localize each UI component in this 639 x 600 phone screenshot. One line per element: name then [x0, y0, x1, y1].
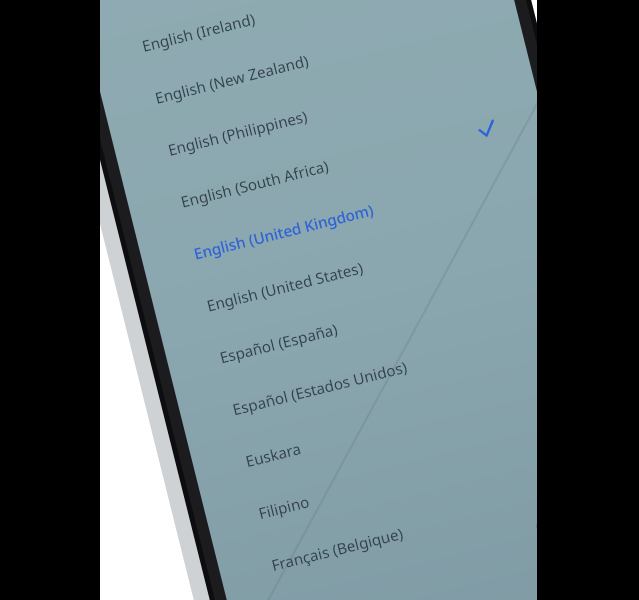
- button[interactable]: Español (España): [186, 94, 396, 112]
- button[interactable]: English (United Kingdom): [174, 58, 384, 76]
- button[interactable]: English (United States): [180, 76, 390, 94]
- button[interactable]: Français (Belgique): [210, 166, 420, 184]
- button[interactable]: Filipino: [204, 148, 414, 166]
- button[interactable]: English (Philippines): [162, 22, 372, 40]
- button[interactable]: Euskara: [198, 130, 408, 148]
- button[interactable]: English (South Africa): [168, 40, 378, 58]
- button[interactable]: English (New Zealand): [156, 4, 366, 22]
- button[interactable]: Español (Estados Unidos): [192, 112, 402, 130]
